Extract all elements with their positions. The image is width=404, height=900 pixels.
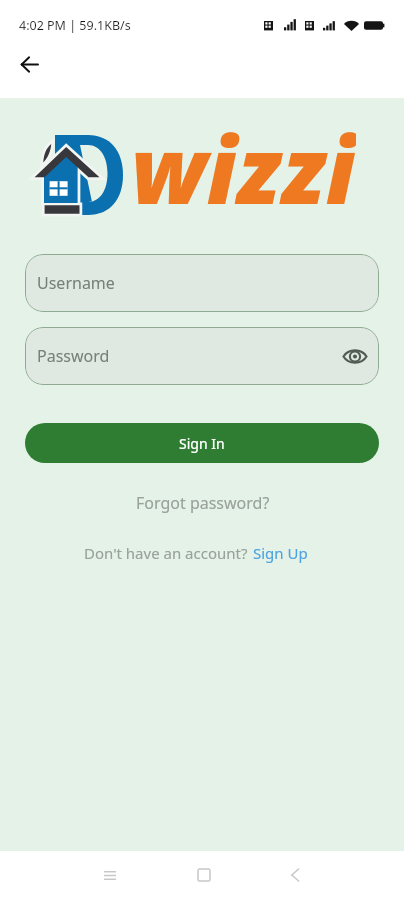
button[interactable]: Home [180, 851, 228, 899]
button[interactable]: Forgot password? [126, 487, 280, 519]
button[interactable]: Sign In [25, 423, 379, 463]
staticText: 4:02 PM | 59.1KB/s [19, 17, 131, 34]
staticText: Password [37, 345, 110, 367]
staticText: Username [37, 272, 115, 294]
staticText: wizzi [131, 106, 356, 226]
button[interactable]: Back [271, 851, 319, 899]
button[interactable]: Show password [338, 339, 372, 373]
staticText: Don't have an account? [84, 543, 248, 563]
staticText: Forgot password? [136, 492, 270, 514]
button[interactable]: Username [25, 254, 379, 312]
button[interactable]: Password [25, 327, 379, 385]
button[interactable]: Recent apps [86, 851, 134, 899]
staticText: Sign In [179, 434, 225, 453]
button[interactable]: Sign Up [248, 539, 313, 567]
staticText: Sign Up [253, 543, 308, 563]
button[interactable]: Navigate back [7, 42, 52, 87]
